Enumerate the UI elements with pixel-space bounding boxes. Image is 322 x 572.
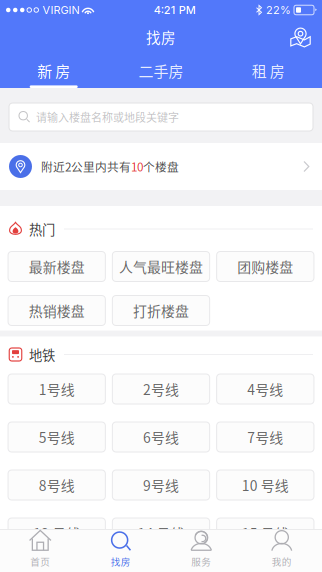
staticText: 4号线 (247, 379, 283, 399)
button[interactable]: 服务 (161, 530, 241, 572)
staticText: 热门 (29, 219, 55, 239)
staticText: 新 房 (37, 60, 70, 81)
button[interactable]: 热销楼盘 (8, 295, 105, 325)
button[interactable]: 我的 (241, 530, 322, 572)
staticText: 12 号线 (33, 523, 80, 543)
button[interactable]: 请输入楼盘名称或地段关键字 (9, 103, 313, 131)
staticText: 热销楼盘 (29, 300, 85, 320)
staticText: 1号线 (39, 379, 75, 399)
button[interactable]: 18 号线 (217, 566, 314, 572)
button[interactable]: 16 号线 (8, 566, 105, 572)
staticText: 找房 (146, 26, 176, 47)
staticText: 10 (131, 158, 143, 175)
button[interactable]: 14 号线 (112, 518, 210, 548)
button[interactable]: 9号线 (112, 470, 210, 500)
staticText: 4:21 PM (154, 3, 196, 17)
button[interactable]: 12 号线 (8, 518, 105, 548)
button[interactable]: 1号线 (8, 374, 105, 404)
button[interactable]: 17 号线 (112, 566, 210, 572)
staticText: 地铁 (29, 345, 55, 364)
button[interactable]: 15 号线 (217, 518, 314, 548)
button[interactable]: 找房 (80, 530, 161, 572)
button[interactable]: 二手房 (107, 54, 215, 88)
button[interactable]: 5号线 (8, 422, 105, 452)
staticText: 10 号线 (242, 475, 289, 495)
staticText: 6号线 (143, 427, 179, 447)
staticText: 个楼盘 (143, 158, 179, 175)
button[interactable]: 新 房 (0, 54, 107, 88)
staticText: 人气最旺楼盘 (119, 256, 203, 276)
button[interactable]: 打折楼盘 (112, 295, 210, 325)
button[interactable]: 8号线 (8, 470, 105, 500)
button[interactable]: 首页 (0, 530, 80, 572)
staticText: 2号线 (143, 379, 179, 399)
button[interactable]: 7号线 (217, 422, 314, 452)
staticText: 找房 (111, 554, 131, 568)
button[interactable]: 10 号线 (217, 470, 314, 500)
staticText: 打折楼盘 (133, 300, 189, 320)
button[interactable]: 6号线 (112, 422, 210, 452)
button[interactable]: 租 房 (215, 54, 322, 88)
button[interactable]: 附近2公里内共有 (0, 143, 322, 190)
button[interactable]: 人气最旺楼盘 (112, 251, 210, 281)
button[interactable]: 最新楼盘 (8, 251, 105, 281)
staticText: 7号线 (247, 427, 283, 447)
staticText: 附近2公里内共有 (41, 158, 131, 175)
staticText: 请输入楼盘名称或地段关键字 (36, 109, 179, 125)
staticText: 5号线 (39, 427, 75, 447)
staticText: 二手房 (138, 60, 183, 81)
staticText: 9号线 (143, 475, 179, 495)
staticText: 团购楼盘 (237, 256, 293, 276)
button[interactable]: 地图找房 (279, 21, 322, 52)
staticText: 8号线 (39, 475, 75, 495)
button[interactable]: 团购楼盘 (217, 251, 314, 281)
staticText: VIRGIN (42, 3, 79, 17)
staticText: 我的 (272, 554, 292, 568)
staticText: 15 号线 (242, 523, 289, 543)
button[interactable]: 4号线 (217, 374, 314, 404)
staticText: 最新楼盘 (29, 256, 85, 276)
staticText: 租 房 (252, 60, 285, 81)
button[interactable]: 2号线 (112, 374, 210, 404)
staticText: 服务 (191, 554, 211, 568)
staticText: 首页 (30, 554, 50, 568)
staticText: 14 号线 (137, 523, 184, 543)
staticText: 22% (266, 3, 291, 17)
